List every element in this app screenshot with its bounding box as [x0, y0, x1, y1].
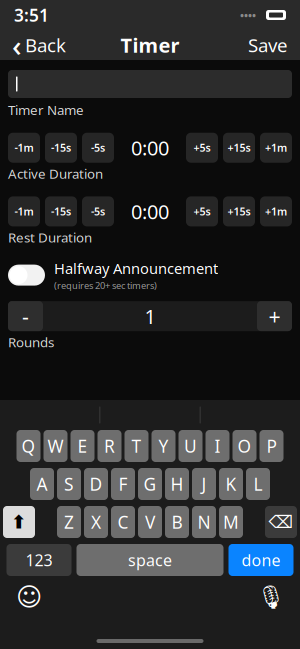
staticText: -5s	[91, 141, 105, 155]
button[interactable]: ⌫	[265, 506, 297, 538]
staticText: Timer Name	[8, 101, 84, 119]
button[interactable]: O	[232, 430, 256, 462]
staticText: ⬆	[11, 511, 27, 533]
button[interactable]: H	[165, 468, 189, 500]
button[interactable]: -5s	[82, 133, 114, 163]
button[interactable]: S	[57, 468, 81, 500]
button[interactable]: +5s	[186, 133, 218, 163]
staticText: -15s	[51, 204, 71, 218]
staticText: +15s	[227, 204, 250, 218]
button[interactable]: -	[8, 301, 43, 331]
staticText: 1	[144, 303, 155, 329]
staticText: H	[170, 472, 183, 495]
staticText: +15s	[227, 141, 250, 155]
staticText: B	[171, 510, 182, 533]
button[interactable]: Z	[57, 506, 81, 538]
button[interactable]: +1m	[260, 196, 292, 226]
staticText: Rounds	[8, 333, 54, 351]
staticText: 0:00	[131, 198, 169, 225]
button[interactable]: ⬆	[3, 506, 35, 538]
staticText: U	[184, 434, 197, 457]
staticText: +1m	[265, 141, 287, 155]
button[interactable]: R	[97, 430, 121, 462]
button[interactable]: J	[192, 468, 216, 500]
staticText: -1m	[14, 204, 33, 218]
staticText: L	[253, 472, 262, 495]
button[interactable]: +15s	[223, 133, 255, 163]
staticText: K	[225, 472, 236, 495]
button[interactable]: Emoji	[14, 582, 44, 612]
staticText: ☺	[16, 583, 42, 611]
button[interactable]: -1m	[8, 133, 40, 163]
staticText: done	[241, 549, 280, 571]
staticText: O	[237, 434, 251, 457]
staticText: J	[201, 472, 206, 495]
staticText: D	[89, 472, 102, 495]
button[interactable]: E	[70, 430, 94, 462]
button[interactable]: W	[43, 430, 67, 462]
button[interactable]: ‹	[4, 31, 74, 59]
button[interactable]: done	[228, 544, 293, 576]
button[interactable]: I	[205, 430, 229, 462]
button[interactable]: A	[30, 468, 54, 500]
button[interactable]: -1m	[8, 196, 40, 226]
staticText: +5s	[193, 141, 210, 155]
button[interactable]: F	[111, 468, 135, 500]
staticText: S	[64, 472, 74, 495]
button[interactable]: X	[84, 506, 108, 538]
button[interactable]: L	[246, 468, 270, 500]
staticText: space	[128, 549, 172, 571]
staticText: 🎙	[256, 584, 285, 610]
button[interactable]: +1m	[260, 133, 292, 163]
button[interactable]: C	[111, 506, 135, 538]
staticText: +1m	[265, 204, 287, 218]
staticText: V	[145, 510, 155, 533]
button[interactable]: Y	[151, 430, 175, 462]
staticText: W	[47, 434, 63, 457]
staticText: I	[214, 434, 220, 457]
button[interactable]: space	[76, 544, 223, 576]
button[interactable]: +15s	[223, 196, 255, 226]
staticText: 123	[25, 549, 52, 571]
staticText: ‹	[12, 25, 22, 64]
button[interactable]: Save	[240, 31, 296, 59]
button[interactable]: B	[165, 506, 189, 538]
staticText: F	[118, 472, 127, 495]
button[interactable]: V	[138, 506, 162, 538]
button[interactable]: K	[219, 468, 243, 500]
button[interactable]: -5s	[82, 196, 114, 226]
button[interactable]: +5s	[186, 196, 218, 226]
staticText: R	[104, 434, 115, 457]
staticText: -15s	[51, 141, 71, 155]
button[interactable]: Halfway Announcement	[0, 258, 300, 292]
button[interactable]: -15s	[45, 133, 77, 163]
button[interactable]: Q	[16, 430, 40, 462]
staticText: Rest Duration	[8, 228, 92, 246]
staticText: X	[91, 510, 101, 533]
button[interactable]: -15s	[45, 196, 77, 226]
button[interactable]: 123	[6, 544, 71, 576]
staticText: G	[143, 472, 156, 495]
staticText: +5s	[193, 204, 210, 218]
staticText: 0:00	[131, 134, 169, 161]
button[interactable]: G	[138, 468, 162, 500]
button[interactable]: T	[124, 430, 148, 462]
button[interactable]: P	[259, 430, 283, 462]
button[interactable]: +	[257, 301, 292, 331]
staticText: ••••	[240, 8, 256, 22]
staticText: ⌫	[268, 512, 293, 532]
staticText: Timer	[120, 32, 179, 58]
staticText: Back	[25, 33, 66, 57]
button[interactable]	[8, 70, 292, 98]
button[interactable]: Dictation	[256, 582, 286, 612]
button[interactable]: D	[84, 468, 108, 500]
button[interactable]: N	[192, 506, 216, 538]
staticText: N	[197, 510, 210, 533]
staticText: 3:51	[14, 3, 49, 26]
staticText: A	[36, 472, 47, 495]
staticText: M	[223, 510, 239, 533]
button[interactable]: M	[219, 506, 243, 538]
staticText: T	[131, 434, 141, 457]
button[interactable]: U	[178, 430, 202, 462]
staticText: Halfway Announcement	[54, 259, 218, 278]
